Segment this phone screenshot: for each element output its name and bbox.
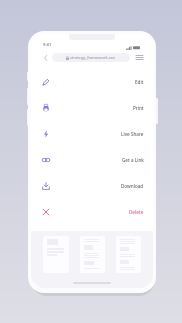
button[interactable]: Live Share (31, 121, 153, 147)
button[interactable]: Back (40, 52, 51, 63)
button[interactable]: Get a Link (31, 147, 153, 173)
staticText: Delete (129, 209, 144, 215)
staticText: strategy_framework.xxx (70, 55, 116, 60)
staticText: Live Share (121, 131, 144, 137)
button[interactable]: Download (31, 173, 153, 199)
button[interactable]: strategy_framework.xxx (52, 53, 130, 62)
button[interactable] (43, 236, 69, 273)
button[interactable]: Print (31, 95, 153, 121)
staticText: Get a Link (122, 157, 144, 163)
staticText: Edit (135, 79, 144, 85)
button[interactable]: Edit (31, 69, 153, 95)
button[interactable] (116, 236, 141, 273)
staticText: Download (121, 183, 144, 189)
button[interactable]: Delete (31, 199, 153, 225)
staticText: 9:41 (43, 42, 52, 48)
button[interactable]: Menu (133, 51, 145, 63)
staticText: Print (133, 105, 144, 111)
button[interactable] (80, 236, 105, 273)
